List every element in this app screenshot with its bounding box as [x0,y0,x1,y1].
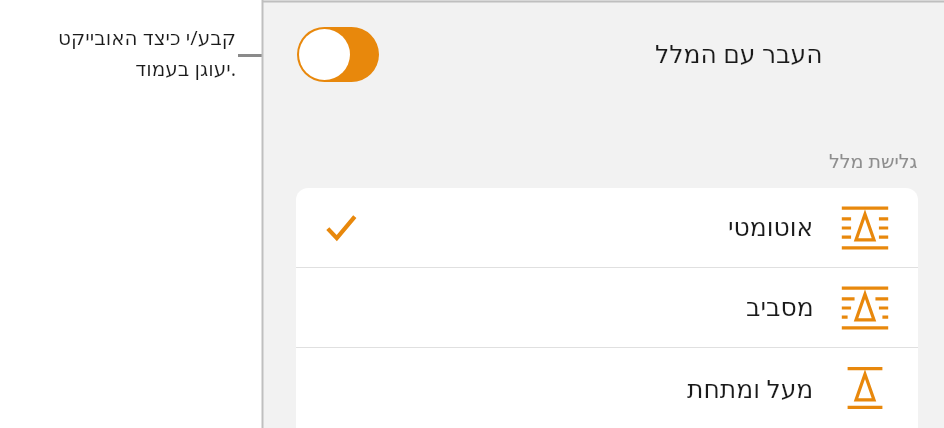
staticText: גלישת מלל [829,148,918,174]
button[interactable]: אוטומטי [296,188,918,267]
button[interactable]: מעל ומתחת [296,348,918,427]
staticText: מסביב [746,293,814,322]
staticText: אוטומטי [728,213,814,242]
button[interactable]: מסביב [296,268,918,347]
staticText: קבע/י כיצד האובייקט יעוגן בעמוד. [0,24,236,82]
staticText: העבר עם המלל [655,36,823,70]
button[interactable]: העבר עם המלל [297,27,379,82]
staticText: מעל ומתחת [687,371,814,405]
